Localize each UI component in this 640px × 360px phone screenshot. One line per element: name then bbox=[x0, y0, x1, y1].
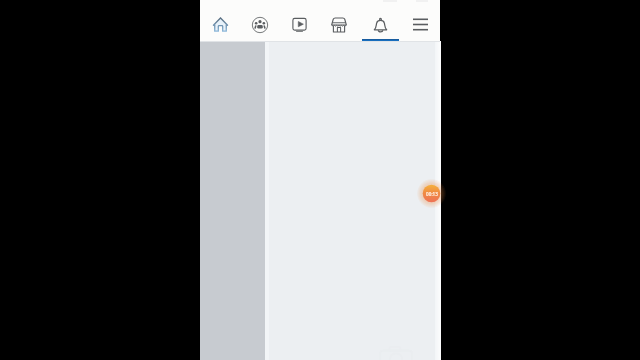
button[interactable]: Watch bbox=[279, 0, 319, 41]
button[interactable]: Menu bbox=[400, 0, 440, 41]
button[interactable]: Marketplace bbox=[319, 0, 359, 41]
button[interactable]: Recording timer bbox=[419, 181, 444, 206]
button[interactable]: Home bbox=[200, 0, 240, 41]
button[interactable]: Notifications bbox=[360, 0, 400, 41]
button[interactable]: Friends bbox=[240, 0, 280, 41]
staticText: 00:13 bbox=[426, 191, 438, 197]
